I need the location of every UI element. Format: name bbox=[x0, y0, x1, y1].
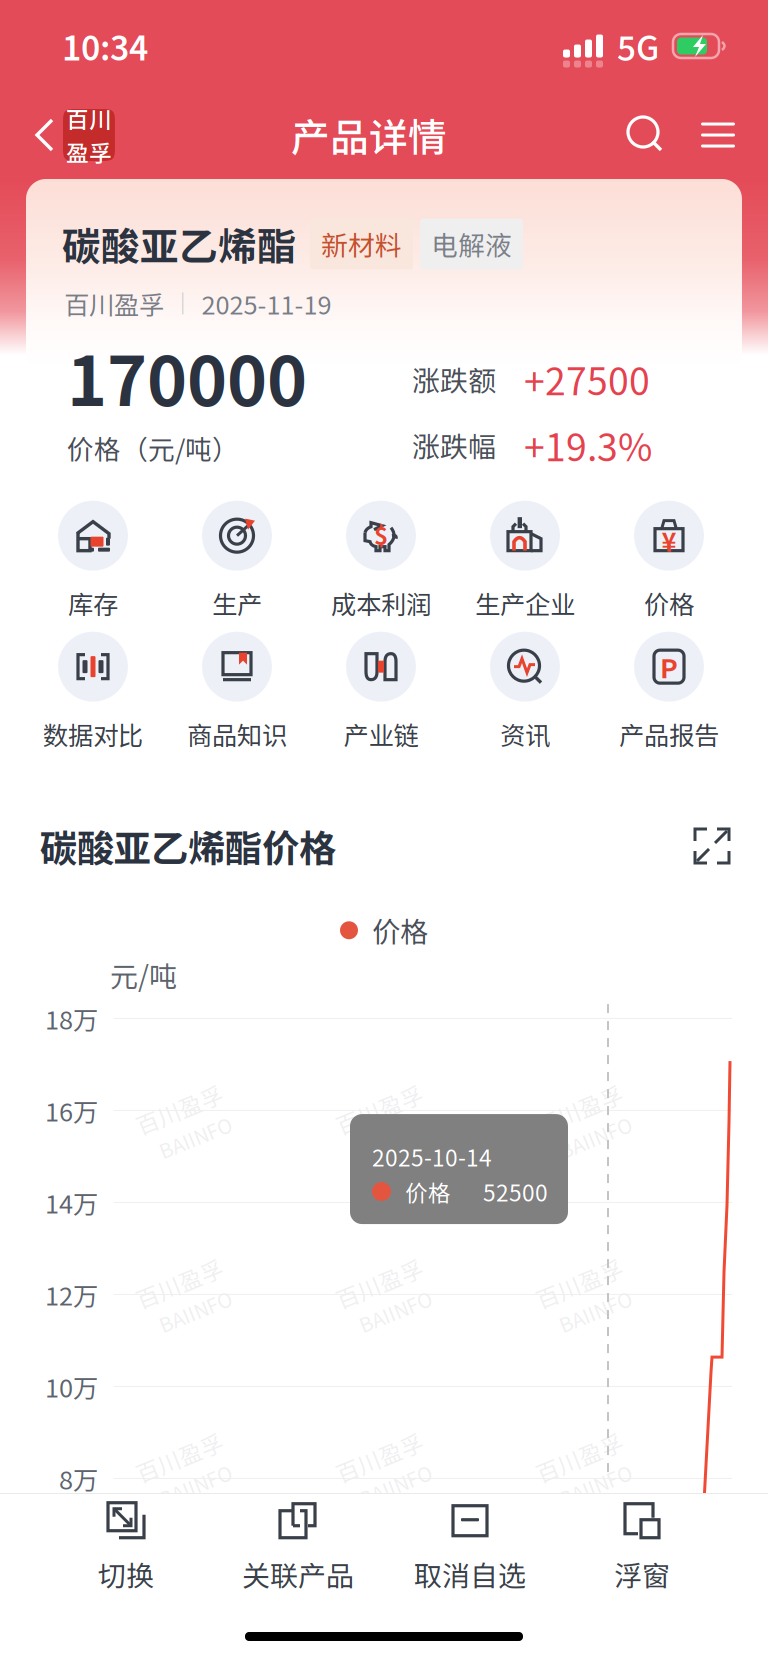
staticText: P bbox=[660, 647, 678, 686]
staticText: 8万 bbox=[59, 1460, 98, 1497]
staticText: 取消自选 bbox=[414, 1554, 526, 1594]
staticText: 产品报告 bbox=[619, 716, 719, 752]
staticText: $ bbox=[374, 517, 388, 552]
button[interactable]: 切换 bbox=[40, 1499, 212, 1595]
staticText: 百川盈孚 bbox=[64, 285, 164, 322]
staticText: 百川盈孚 bbox=[139, 1440, 231, 1472]
staticText: BAIINFO bbox=[551, 1473, 628, 1502]
staticText: 2025-11-19 bbox=[201, 285, 331, 322]
staticText: 涨跌额 bbox=[412, 359, 496, 399]
staticText: 百川盈孚 bbox=[139, 1092, 231, 1124]
staticText: 百川盈孚 bbox=[539, 1092, 631, 1124]
staticText: 百川盈孚 bbox=[539, 1440, 631, 1472]
staticText: BAIINFO bbox=[551, 1125, 628, 1154]
staticText: BAIINFO bbox=[351, 1473, 428, 1502]
staticText: 电解液 bbox=[431, 225, 512, 263]
staticText: +19.3% bbox=[524, 418, 652, 472]
staticText: +27500 bbox=[524, 352, 650, 406]
staticText: 百川盈孚 bbox=[539, 1266, 631, 1298]
button[interactable]: Fullscreen bbox=[684, 818, 740, 874]
staticText: 14万 bbox=[45, 1184, 98, 1221]
staticText: 16万 bbox=[45, 1092, 98, 1129]
staticText: 浮窗 bbox=[614, 1554, 670, 1594]
staticText: BAIINFO bbox=[151, 1473, 228, 1502]
staticText: 百川盈孚 bbox=[339, 1266, 431, 1298]
staticText: 12万 bbox=[45, 1276, 98, 1313]
button[interactable]: 数据对比 bbox=[21, 633, 165, 751]
staticText: 成本利润 bbox=[331, 585, 431, 621]
staticText: 52500 bbox=[483, 1175, 548, 1208]
staticText: 产业链 bbox=[343, 716, 418, 752]
button[interactable]: 库存 bbox=[21, 502, 165, 620]
staticText: 元/吨 bbox=[110, 954, 177, 995]
button[interactable]: 浮窗 bbox=[556, 1499, 728, 1595]
staticText: 10:34 bbox=[62, 22, 148, 70]
button[interactable]: 生产 bbox=[165, 502, 309, 620]
button[interactable]: Back bbox=[0, 102, 123, 168]
staticText: BAIINFO bbox=[551, 1299, 628, 1328]
button[interactable]: P bbox=[597, 633, 741, 751]
button[interactable]: 资讯 bbox=[453, 633, 597, 751]
staticText: 百川盈孚 bbox=[339, 1092, 431, 1124]
button[interactable]: $ bbox=[309, 502, 453, 620]
staticText: 百川 bbox=[66, 102, 112, 134]
staticText: BAIINFO bbox=[351, 1299, 428, 1328]
staticText: 价格 bbox=[644, 585, 694, 621]
staticText: ¥ bbox=[661, 522, 676, 559]
staticText: 百川盈孚 bbox=[139, 1266, 231, 1298]
staticText: 数据对比 bbox=[43, 716, 143, 752]
button[interactable]: Search bbox=[615, 104, 677, 166]
staticText: BAIINFO bbox=[151, 1299, 228, 1328]
staticText: 10万 bbox=[45, 1368, 98, 1405]
staticText: 产品详情 bbox=[291, 107, 447, 163]
staticText: 库存 bbox=[68, 585, 118, 621]
staticText: 2025-10-14 bbox=[372, 1140, 492, 1173]
button[interactable]: 产业链 bbox=[309, 633, 453, 751]
staticText: 价格 bbox=[405, 1175, 451, 1208]
staticText: 百川盈孚 bbox=[339, 1440, 431, 1472]
staticText: 关联产品 bbox=[242, 1554, 354, 1594]
staticText: 涨跌幅 bbox=[412, 425, 496, 465]
staticText: 生产 bbox=[212, 585, 262, 621]
staticText: BAIINFO bbox=[351, 1125, 428, 1154]
staticText: 碳酸亚乙烯酯价格 bbox=[40, 819, 336, 873]
staticText: 5G bbox=[617, 22, 659, 70]
staticText: 价格（元/吨） bbox=[67, 428, 239, 467]
staticText: 18万 bbox=[45, 1000, 98, 1037]
staticText: BAIINFO bbox=[151, 1125, 228, 1154]
staticText: 新材料 bbox=[321, 225, 402, 263]
staticText: 170000 bbox=[67, 327, 307, 425]
button[interactable]: ¥ bbox=[597, 502, 741, 620]
button[interactable]: 生产企业 bbox=[453, 502, 597, 620]
staticText: 价格 bbox=[372, 910, 428, 950]
staticText: 碳酸亚乙烯酯 bbox=[62, 216, 296, 272]
staticText: 切换 bbox=[98, 1554, 154, 1594]
staticText: 生产企业 bbox=[475, 585, 575, 621]
staticText: 资讯 bbox=[500, 716, 550, 752]
button[interactable]: Menu bbox=[687, 104, 749, 166]
button[interactable]: 关联产品 bbox=[212, 1499, 384, 1595]
button[interactable]: 商品知识 bbox=[165, 633, 309, 751]
staticText: 盈孚 bbox=[66, 135, 112, 168]
button[interactable]: 取消自选 bbox=[384, 1499, 556, 1595]
staticText: 商品知识 bbox=[187, 716, 287, 752]
